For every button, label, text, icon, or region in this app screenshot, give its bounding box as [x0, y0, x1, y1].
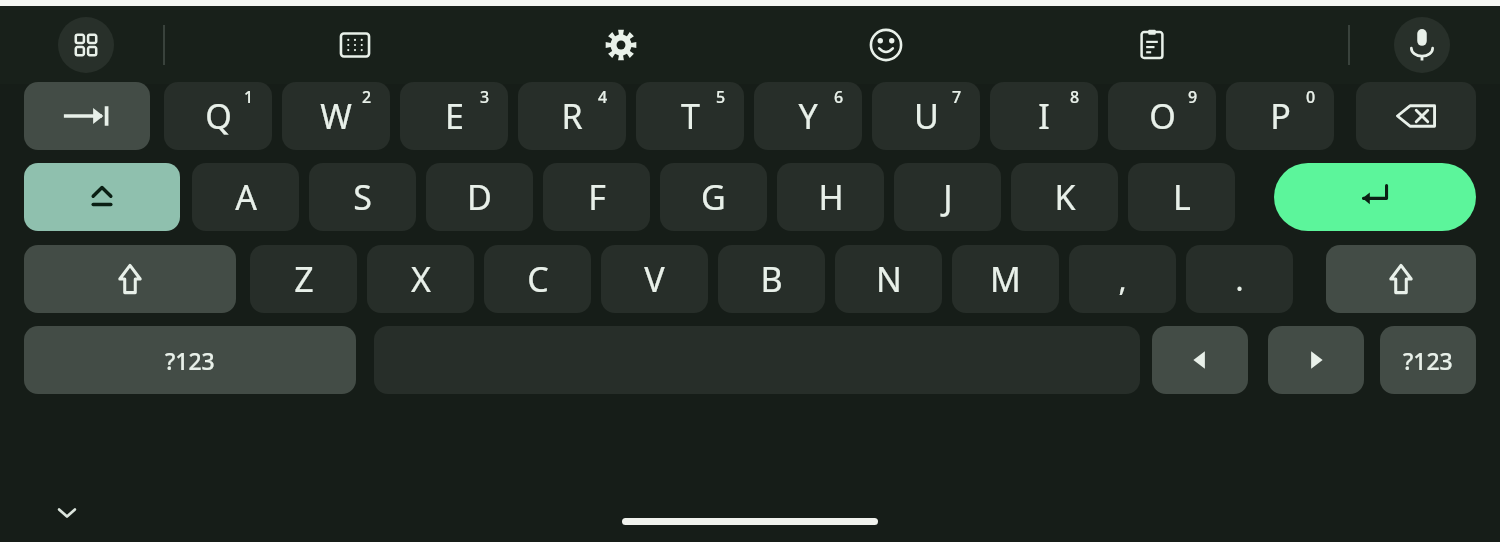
- button[interactable]: T: [636, 82, 744, 150]
- staticText: .: [1235, 259, 1244, 300]
- staticText: ?123: [165, 345, 215, 376]
- staticText: C: [527, 256, 549, 302]
- button[interactable]: M: [952, 245, 1059, 313]
- button[interactable]: X: [367, 245, 474, 313]
- button[interactable]: Backspace: [1356, 82, 1476, 150]
- button[interactable]: A: [192, 163, 299, 231]
- button[interactable]: W: [282, 82, 390, 150]
- button[interactable]: I: [990, 82, 1098, 150]
- button[interactable]: J: [894, 163, 1001, 231]
- button[interactable]: Q: [164, 82, 272, 150]
- staticText: S: [353, 174, 372, 220]
- staticText: 8: [1070, 86, 1080, 108]
- staticText: 0: [1306, 86, 1316, 108]
- button[interactable]: Voice input: [1394, 17, 1450, 73]
- staticText: V: [644, 256, 665, 302]
- button[interactable]: Settings: [595, 19, 647, 71]
- button[interactable]: L: [1128, 163, 1235, 231]
- button[interactable]: S: [309, 163, 416, 231]
- staticText: M: [990, 256, 1021, 302]
- staticText: U: [914, 93, 939, 139]
- button[interactable]: O: [1108, 82, 1216, 150]
- button[interactable]: .: [1186, 245, 1293, 313]
- button[interactable]: R: [518, 82, 626, 150]
- staticText: O: [1149, 93, 1176, 139]
- button[interactable]: G: [660, 163, 767, 231]
- button[interactable]: ?123: [24, 326, 356, 394]
- button[interactable]: P: [1226, 82, 1334, 150]
- staticText: K: [1054, 174, 1076, 220]
- staticText: Y: [798, 93, 818, 139]
- staticText: 5: [716, 86, 726, 108]
- staticText: F: [588, 174, 606, 220]
- button[interactable]: Hide keyboard: [45, 495, 89, 531]
- staticText: 1: [244, 86, 254, 108]
- staticText: 2: [362, 86, 372, 108]
- staticText: E: [445, 93, 464, 139]
- staticText: 3: [480, 86, 490, 108]
- staticText: Q: [205, 93, 232, 139]
- staticText: A: [235, 174, 257, 220]
- staticText: ,: [1118, 259, 1127, 300]
- button[interactable]: ,: [1069, 245, 1176, 313]
- staticText: 4: [598, 86, 608, 108]
- button[interactable]: One-handed mode: [329, 19, 381, 71]
- button[interactable]: U: [872, 82, 980, 150]
- staticText: I: [1038, 93, 1050, 139]
- button[interactable]: Tab: [24, 82, 150, 150]
- button[interactable]: ?123: [1380, 326, 1476, 394]
- button[interactable]: E: [400, 82, 508, 150]
- staticText: P: [1270, 93, 1291, 139]
- button[interactable]: Shift: [1326, 245, 1476, 313]
- button[interactable]: Move cursor right: [1268, 326, 1364, 394]
- button[interactable]: F: [543, 163, 650, 231]
- button[interactable]: V: [601, 245, 708, 313]
- button[interactable]: K: [1011, 163, 1118, 231]
- staticText: J: [943, 174, 953, 220]
- staticText: 9: [1188, 86, 1198, 108]
- button[interactable]: C: [484, 245, 591, 313]
- button[interactable]: Z: [250, 245, 357, 313]
- button[interactable]: Enter: [1274, 163, 1476, 231]
- button[interactable]: Move cursor left: [1152, 326, 1248, 394]
- staticText: H: [818, 174, 844, 220]
- staticText: 6: [834, 86, 844, 108]
- button[interactable]: Shift: [24, 245, 236, 313]
- button[interactable]: H: [777, 163, 884, 231]
- staticText: D: [467, 174, 492, 220]
- button[interactable]: Clipboard: [1126, 19, 1178, 71]
- button[interactable]: Y: [754, 82, 862, 150]
- staticText: X: [411, 256, 431, 302]
- button[interactable]: B: [718, 245, 825, 313]
- staticText: G: [701, 174, 726, 220]
- staticText: T: [681, 93, 700, 139]
- button[interactable]: Switch keyboard layout: [58, 17, 114, 73]
- staticText: N: [876, 256, 902, 302]
- staticText: W: [320, 93, 352, 139]
- button[interactable]: Caps lock: [24, 163, 180, 231]
- button[interactable]: Emoji: [860, 19, 912, 71]
- staticText: 7: [952, 86, 962, 108]
- staticText: B: [760, 256, 783, 302]
- button[interactable]: N: [835, 245, 942, 313]
- staticText: Z: [294, 256, 314, 302]
- staticText: ?123: [1403, 345, 1453, 376]
- staticText: L: [1173, 174, 1191, 220]
- staticText: R: [561, 93, 583, 139]
- button[interactable]: D: [426, 163, 533, 231]
